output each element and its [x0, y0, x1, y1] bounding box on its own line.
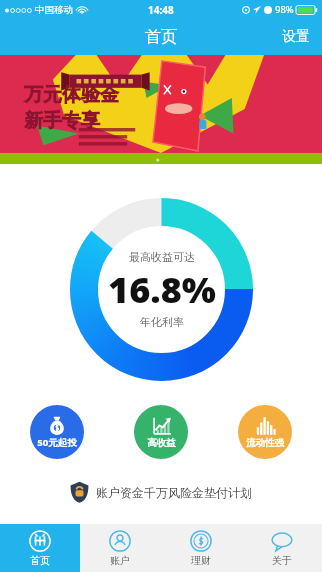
- staticText: 万元体验金: [24, 83, 119, 107]
- button[interactable]: 万元体验金: [0, 55, 322, 164]
- staticText: 高收益: [147, 437, 176, 449]
- staticText: 理财: [191, 554, 211, 567]
- staticText: 14:48: [148, 3, 174, 17]
- button[interactable]: 流动性强: [238, 405, 292, 459]
- staticText: 关于: [272, 554, 292, 567]
- button[interactable]: 理财: [160, 524, 241, 572]
- button[interactable]: 首页: [0, 524, 80, 572]
- button[interactable]: 首页: [145, 27, 177, 47]
- staticText: 50元起投: [37, 436, 77, 449]
- staticText: 流动性强: [246, 437, 284, 449]
- staticText: 账户资金千万风险金垫付计划: [96, 485, 252, 500]
- button[interactable]: 关于: [241, 524, 322, 572]
- staticText: 年化利率: [140, 315, 184, 329]
- staticText: 中国移动: [35, 4, 73, 16]
- button[interactable]: 账户资金千万风险金垫付计划: [58, 477, 264, 507]
- staticText: 首页: [30, 554, 50, 567]
- staticText: 新手专享: [24, 109, 100, 133]
- button[interactable]: 高收益: [134, 405, 188, 459]
- staticText: 16.8%: [108, 265, 216, 314]
- staticText: 最高收益可达: [129, 250, 195, 264]
- button[interactable]: 设置: [270, 19, 322, 55]
- button[interactable]: 50元起投: [30, 405, 84, 459]
- staticText: 设置: [282, 28, 310, 46]
- staticText: 账户: [110, 554, 130, 567]
- staticText: 98%: [275, 3, 294, 16]
- button[interactable]: 账户: [80, 524, 160, 572]
